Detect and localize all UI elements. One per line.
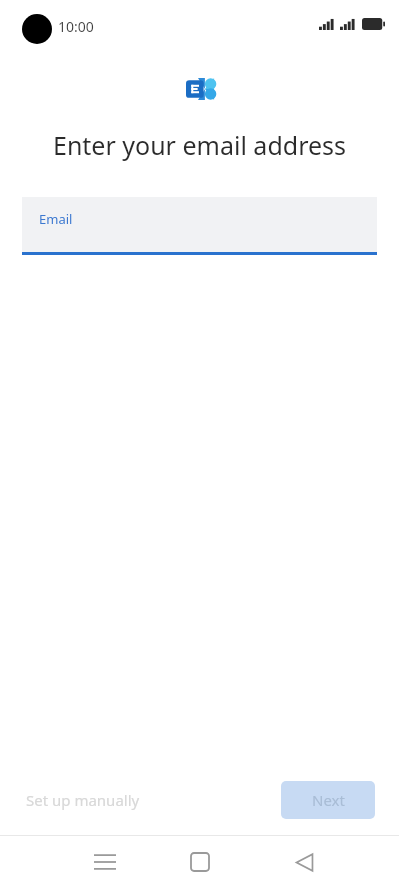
staticText: 10:00 (58, 17, 94, 36)
staticText: Email (39, 210, 73, 228)
button[interactable]: Next (281, 781, 375, 819)
button[interactable]: Email (22, 197, 377, 255)
staticText: Set up manually (26, 790, 140, 810)
button[interactable]: Recent apps (80, 837, 130, 887)
staticText: Enter your email address (20, 128, 379, 162)
button[interactable]: Set up manually (16, 782, 150, 818)
button[interactable]: Back (279, 837, 329, 887)
staticText: Next (312, 790, 345, 810)
button[interactable]: Home (175, 837, 225, 887)
